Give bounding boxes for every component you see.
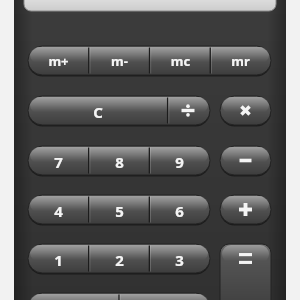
staticText: 1 xyxy=(28,250,89,268)
staticText: 5 xyxy=(89,201,150,219)
button[interactable]: Multiply xyxy=(220,96,271,125)
button[interactable]: 1 xyxy=(28,244,89,273)
staticText: mc xyxy=(150,52,211,70)
button[interactable]: 9 xyxy=(149,146,210,175)
button[interactable]: Divide xyxy=(168,96,210,125)
button[interactable]: 3 xyxy=(149,244,210,273)
button[interactable]: 5 xyxy=(89,195,150,224)
button[interactable]: Decimal point xyxy=(119,293,210,300)
button[interactable]: 4 xyxy=(28,195,89,224)
button[interactable]: m- xyxy=(89,46,150,75)
staticText: 3 xyxy=(149,250,210,268)
staticText: 4 xyxy=(28,201,89,219)
staticText: m+ xyxy=(28,52,89,70)
button[interactable]: 6 xyxy=(149,195,210,224)
button[interactable]: mc xyxy=(150,46,211,75)
staticText: 7 xyxy=(28,152,89,170)
button[interactable]: Zero xyxy=(28,293,119,300)
staticText: 2 xyxy=(89,250,150,268)
button[interactable]: 7 xyxy=(28,146,89,175)
button[interactable]: Add xyxy=(220,195,271,224)
staticText: C xyxy=(28,102,168,120)
button[interactable]: 2 xyxy=(89,244,150,273)
button[interactable]: Subtract xyxy=(220,146,271,175)
button[interactable]: Equals xyxy=(220,244,271,300)
button[interactable]: mr xyxy=(210,46,271,75)
staticText: mr xyxy=(210,52,271,70)
staticText: 6 xyxy=(149,201,210,219)
staticText: m- xyxy=(89,52,150,70)
button[interactable]: m+ xyxy=(28,46,89,75)
staticText: 9 xyxy=(149,152,210,170)
button[interactable]: C xyxy=(28,96,168,125)
button[interactable]: 8 xyxy=(89,146,150,175)
staticText: 8 xyxy=(89,152,150,170)
